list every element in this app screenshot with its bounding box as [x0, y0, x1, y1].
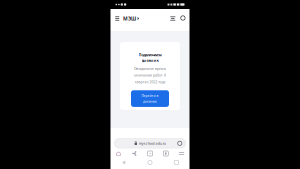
staticText: дневник	[143, 99, 157, 104]
button[interactable]: Share	[126, 148, 142, 159]
button[interactable]: Bookmarks	[158, 148, 174, 159]
button[interactable]: Back	[110, 158, 137, 166]
button[interactable]: Sections	[170, 14, 176, 22]
button[interactable]: МЭШ	[123, 14, 140, 22]
button[interactable]: Menu	[114, 14, 120, 22]
staticText: дневник	[141, 58, 158, 63]
staticText: окончания работ 4	[134, 73, 166, 78]
staticText: myschool.edu.ru	[139, 141, 166, 146]
button[interactable]: Search	[180, 14, 186, 22]
staticText: МЭШ	[123, 15, 136, 22]
button[interactable]: Home	[110, 148, 126, 159]
staticText: Подключаем	[138, 52, 161, 57]
button[interactable]: Home	[137, 158, 163, 166]
button[interactable]: Address bar	[114, 138, 185, 148]
staticText: Ожидаемое время	[134, 66, 166, 71]
staticText: Перейти в	[141, 93, 158, 98]
staticText: квартал 2022 года	[134, 80, 165, 84]
button[interactable]: Перейти в	[131, 90, 169, 107]
button[interactable]: Tabs	[142, 148, 158, 159]
button[interactable]: Recent apps	[163, 158, 189, 166]
button[interactable]: Menu	[174, 148, 189, 159]
